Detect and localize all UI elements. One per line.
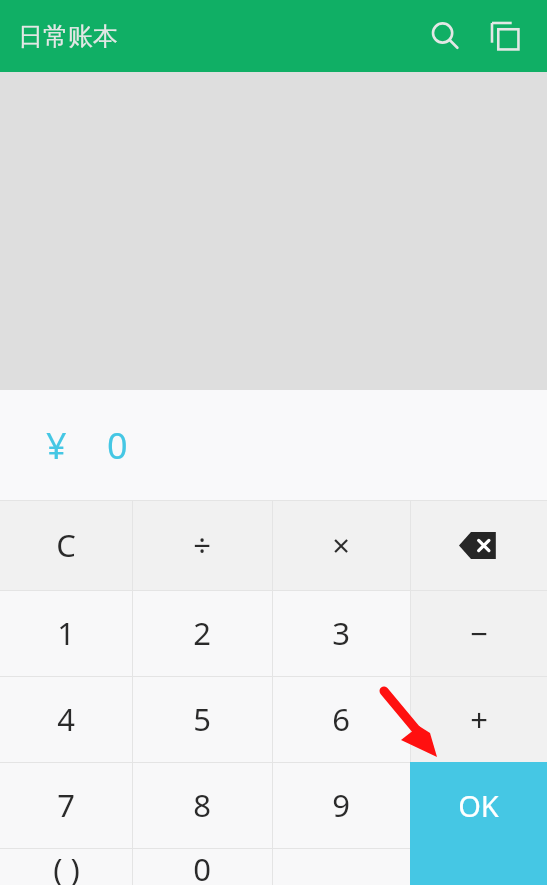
staticText: OK	[458, 786, 499, 825]
button[interactable]: C	[0, 500, 132, 590]
staticText: 2	[193, 612, 211, 654]
button[interactable]: Search	[415, 6, 475, 66]
staticText: ÷	[193, 524, 211, 566]
button[interactable]: 3	[272, 590, 410, 676]
button[interactable]: 日常账本	[18, 21, 118, 52]
staticText: 1	[57, 612, 75, 654]
button[interactable]: −	[410, 590, 547, 676]
staticText: ¥	[46, 421, 67, 470]
staticText: 0	[107, 421, 128, 470]
staticText: 日常账本	[18, 21, 118, 52]
button[interactable]: 6	[272, 676, 410, 762]
button[interactable]: 4	[0, 676, 132, 762]
button[interactable]: ( )	[0, 848, 132, 885]
button[interactable]	[272, 848, 410, 885]
staticText: 9	[332, 784, 350, 826]
button[interactable]: 5	[132, 676, 272, 762]
button[interactable]: ×	[272, 500, 410, 590]
button[interactable]: 7	[0, 762, 132, 848]
button[interactable]: 2	[132, 590, 272, 676]
staticText: 3	[332, 612, 350, 654]
staticText: 7	[57, 784, 75, 826]
staticText: C	[56, 524, 76, 566]
button[interactable]: +	[410, 676, 547, 762]
staticText: 6	[332, 698, 350, 740]
staticText: 5	[193, 698, 211, 740]
staticText: ×	[332, 524, 350, 566]
staticText: ( )	[53, 848, 80, 885]
button[interactable]: 9	[272, 762, 410, 848]
button[interactable]: Backspace	[410, 500, 547, 590]
button[interactable]: ÷	[132, 500, 272, 590]
button[interactable]: 1	[0, 590, 132, 676]
staticText: 8	[193, 784, 211, 826]
staticText: 4	[57, 698, 75, 740]
staticText: +	[470, 698, 488, 740]
staticText: 0	[193, 848, 211, 885]
button[interactable]: 0	[132, 848, 272, 885]
button[interactable]: OK	[410, 762, 547, 848]
button[interactable]: Recent windows	[475, 6, 535, 66]
button[interactable]: 8	[132, 762, 272, 848]
staticText: −	[470, 612, 488, 654]
